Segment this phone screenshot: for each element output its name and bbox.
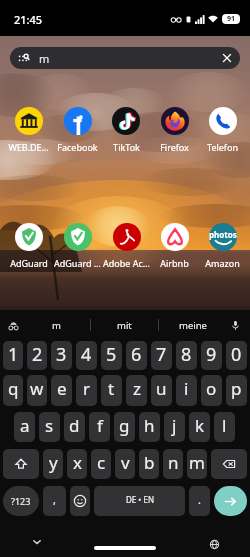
button[interactable]: b [139, 449, 159, 479]
button[interactable]: WEB.DE… [8, 107, 49, 153]
button[interactable]: 5 [101, 341, 122, 370]
staticText: r [83, 377, 91, 400]
button[interactable]: q [3, 375, 23, 406]
staticText: 21:45 [14, 12, 43, 27]
button[interactable]: meine [159, 310, 226, 340]
staticText: Facebook [57, 141, 98, 153]
button[interactable]: Shift [3, 449, 39, 479]
staticText: 91 [227, 14, 236, 24]
button[interactable]: u [151, 375, 172, 406]
button[interactable]: t [101, 375, 122, 406]
button[interactable]: z [126, 375, 147, 406]
button[interactable]: e [51, 375, 72, 406]
button[interactable]: DE • EN [94, 486, 185, 516]
button[interactable]: x [67, 449, 87, 479]
staticText: l [222, 414, 227, 437]
staticText: Airbnb [160, 257, 189, 269]
staticText: n [168, 451, 179, 474]
button[interactable]: r [76, 375, 97, 406]
staticText: o [206, 377, 217, 400]
button[interactable]: . [189, 486, 210, 516]
staticText: 7 [156, 342, 167, 367]
button[interactable]: g [114, 412, 135, 442]
button[interactable]: 9 [201, 341, 222, 370]
button[interactable]: 6 [126, 341, 147, 370]
staticText: DE • EN [126, 494, 154, 505]
button[interactable]: TikTok [112, 107, 140, 153]
staticText: m [189, 451, 205, 474]
button[interactable]: y [43, 449, 63, 479]
staticText: d [69, 414, 80, 437]
button[interactable]: AdGuard [10, 223, 48, 269]
button[interactable]: 0 [226, 341, 247, 370]
staticText: 2 [32, 342, 43, 367]
staticText: m [39, 51, 50, 66]
button[interactable]: 3 [51, 341, 72, 370]
staticText: k [195, 414, 205, 437]
button[interactable]: 8 [176, 341, 197, 370]
staticText: Adobe Ac… [103, 257, 150, 269]
button[interactable]: 2 [27, 341, 47, 370]
button[interactable]: Incognito mode [6, 318, 20, 332]
button[interactable]: n [163, 449, 183, 479]
staticText: p [231, 377, 242, 400]
staticText: 1 [8, 342, 19, 367]
staticText: WEB.DE… [8, 141, 49, 153]
staticText: b [144, 451, 155, 474]
staticText: 3 [56, 342, 67, 367]
button[interactable]: Emoji [70, 486, 90, 516]
button[interactable]: Search [214, 486, 247, 516]
button[interactable]: w [27, 375, 47, 406]
button[interactable]: Telefon [207, 107, 238, 153]
button[interactable]: a [14, 412, 35, 442]
staticText: y [49, 451, 58, 474]
staticText: j [172, 414, 177, 437]
staticText: AdGuard [10, 257, 48, 269]
other: Clear search [222, 53, 232, 63]
button[interactable]: 4 [76, 341, 97, 370]
button[interactable]: , [43, 486, 66, 516]
button[interactable]: Airbnb [160, 223, 189, 269]
staticText: 4 [81, 342, 92, 367]
staticText: q [8, 377, 19, 400]
button[interactable]: 1 [3, 341, 23, 370]
staticText: w [30, 377, 44, 400]
button[interactable]: s [39, 412, 60, 442]
staticText: x [73, 451, 82, 474]
button[interactable]: p [226, 375, 247, 406]
button[interactable]: d [64, 412, 85, 442]
staticText: f [97, 414, 103, 437]
button[interactable]: mit [91, 310, 158, 340]
button[interactable]: j [164, 412, 185, 442]
staticText: . [198, 492, 201, 507]
staticText: Amazon [205, 257, 240, 269]
button[interactable]: Change keyboard language [208, 538, 220, 550]
button[interactable]: Voice input [228, 318, 242, 332]
staticText: i [184, 377, 189, 400]
button[interactable]: Adobe Ac… [103, 223, 150, 269]
staticText: m [52, 319, 61, 332]
button[interactable]: h [139, 412, 160, 442]
button[interactable]: Hide keyboard [30, 535, 44, 549]
button[interactable]: m [10, 47, 240, 69]
staticText: , [53, 492, 56, 507]
staticText: 5 [106, 342, 117, 367]
button[interactable]: Backspace [211, 449, 247, 479]
button[interactable]: m [22, 310, 90, 340]
staticText: ?123 [11, 495, 31, 507]
button[interactable]: f [89, 412, 110, 442]
button[interactable]: i [176, 375, 197, 406]
button[interactable]: Facebook [57, 107, 98, 153]
button[interactable]: c [91, 449, 111, 479]
button[interactable]: m [187, 449, 207, 479]
button[interactable]: k [189, 412, 210, 442]
staticText: AdGuard … [54, 257, 101, 269]
button[interactable]: AdGuard … [54, 223, 101, 269]
button[interactable]: ?123 [3, 486, 39, 516]
button[interactable]: v [115, 449, 135, 479]
button[interactable]: o [201, 375, 222, 406]
button[interactable]: Firefox [160, 107, 189, 153]
button[interactable]: l [214, 412, 235, 442]
button[interactable]: photos [205, 223, 240, 269]
button[interactable]: 7 [151, 341, 172, 370]
